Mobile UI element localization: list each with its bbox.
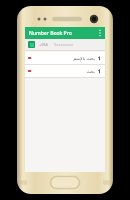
button[interactable]: More options — [95, 28, 105, 38]
button[interactable]: بحث بالإسم — [25, 52, 105, 64]
staticText: +966 — [39, 42, 49, 47]
button[interactable]: Contacts — [28, 41, 35, 48]
button[interactable]: +966 — [39, 42, 49, 47]
staticText: بحث — [86, 69, 95, 74]
staticText: 5xxxxxxxx — [54, 42, 74, 47]
button[interactable]: Number Book Pro — [29, 30, 95, 37]
button[interactable]: 5xxxxxxxx — [54, 42, 102, 47]
button[interactable]: بحث — [25, 65, 105, 77]
staticText: بحث بالإسم — [73, 55, 95, 61]
